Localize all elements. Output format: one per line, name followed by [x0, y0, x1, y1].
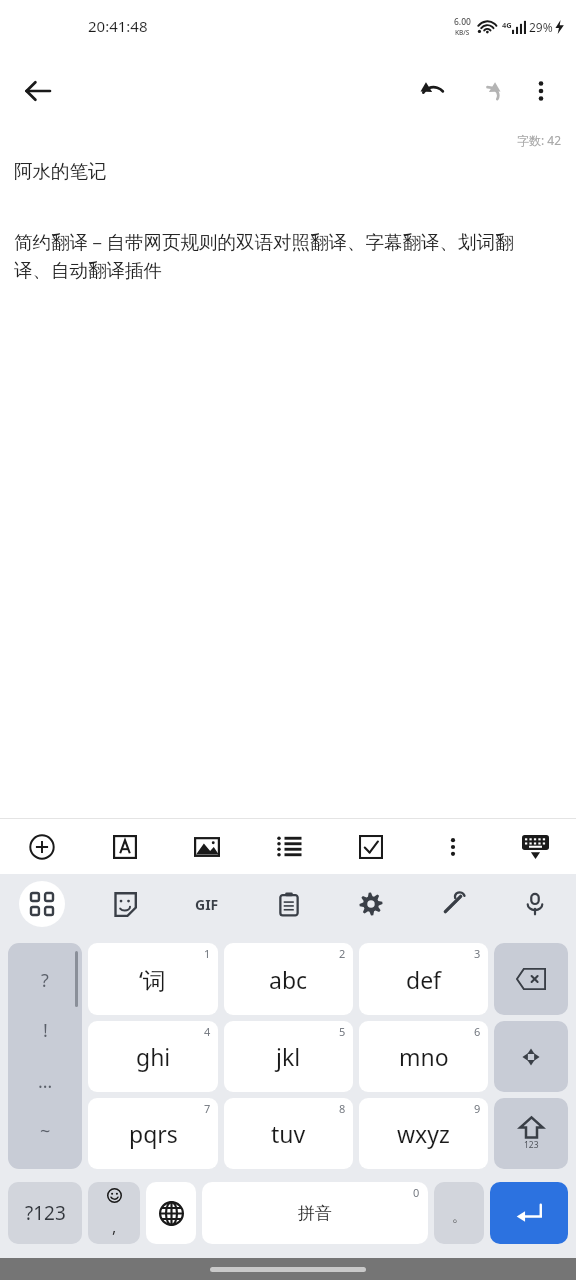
staticText: 20:41:48	[88, 16, 148, 36]
button[interactable]: Redo	[460, 64, 514, 118]
button[interactable]: Delete	[494, 943, 568, 1015]
button[interactable]: Move cursor	[494, 1021, 568, 1092]
staticText: 8	[339, 1101, 346, 1116]
button[interactable]: Clipboard	[248, 874, 330, 934]
button[interactable]: Emoji and comma	[88, 1182, 140, 1244]
button[interactable]: 6	[359, 1021, 488, 1092]
staticText: jkl	[276, 1041, 301, 1072]
button[interactable]: Settings	[330, 874, 412, 934]
staticText: pqrs	[129, 1118, 178, 1149]
staticText: GIF	[195, 895, 219, 914]
button[interactable]: GIF	[166, 874, 248, 934]
staticText: 阿水的笔记	[14, 160, 107, 183]
button[interactable]: ?123	[8, 1182, 82, 1244]
button[interactable]: More options	[514, 64, 568, 118]
staticText: 4	[204, 1024, 211, 1039]
staticText: KB/S	[455, 28, 470, 37]
button[interactable]: Shift / numbers	[494, 1098, 568, 1169]
button[interactable]: Enter	[490, 1182, 568, 1244]
staticText: 6	[474, 1024, 481, 1039]
staticText: 3	[474, 946, 481, 961]
staticText: ghi	[136, 1041, 171, 1072]
button[interactable]: 4	[88, 1021, 218, 1092]
staticText: ~	[40, 1119, 51, 1144]
staticText: 29%	[529, 19, 553, 35]
staticText: 5	[339, 1024, 346, 1039]
staticText: 简约翻译－自带网页规则的双语对照翻译、字幕翻译、划词翻译、自动翻译插件	[14, 231, 550, 282]
staticText: abc	[269, 964, 308, 995]
button[interactable]: 1	[88, 943, 218, 1015]
button[interactable]: Insert image	[166, 819, 248, 874]
button[interactable]: 7	[88, 1098, 218, 1169]
staticText: 9	[474, 1101, 481, 1116]
staticText: tuv	[271, 1118, 306, 1149]
staticText: 6.00	[454, 16, 471, 28]
button[interactable]: 9	[359, 1098, 488, 1169]
button[interactable]: 3	[359, 943, 488, 1015]
button[interactable]: Stickers	[83, 874, 166, 934]
staticText: ‘词	[139, 964, 167, 995]
button[interactable]: 2	[224, 943, 353, 1015]
staticText: …	[38, 1069, 53, 1094]
button[interactable]: Handwriting	[412, 874, 494, 934]
staticText: !	[43, 1018, 48, 1043]
staticText: wxyz	[397, 1118, 450, 1149]
button[interactable]: Undo	[406, 64, 460, 118]
staticText: 拼音	[298, 1203, 332, 1224]
button[interactable]: Apps	[0, 874, 83, 934]
staticText: mno	[399, 1041, 449, 1072]
staticText: 123	[524, 1139, 539, 1151]
button[interactable]: 0	[202, 1182, 428, 1244]
staticText: 1	[204, 946, 211, 961]
button[interactable]: Voice input	[494, 874, 576, 934]
staticText: 。	[452, 1208, 466, 1226]
staticText: ,	[112, 1216, 117, 1238]
button[interactable]: Checklist	[330, 819, 412, 874]
button[interactable]: Period	[434, 1182, 484, 1244]
staticText: 7	[204, 1101, 211, 1116]
staticText: 2	[339, 946, 346, 961]
button[interactable]: More	[412, 819, 494, 874]
button[interactable]: 8	[224, 1098, 353, 1169]
staticText: 字数: 42	[517, 132, 562, 148]
button[interactable]: Symbols	[8, 943, 82, 1169]
button[interactable]: Hide keyboard	[494, 819, 576, 874]
button[interactable]: List	[248, 819, 330, 874]
staticText: ?123	[25, 1200, 66, 1226]
button[interactable]: Switch language	[146, 1182, 196, 1244]
button[interactable]: Text format	[83, 819, 166, 874]
button[interactable]: Back	[12, 65, 64, 117]
staticText: def	[406, 964, 442, 995]
staticText: 4G	[502, 20, 512, 30]
button[interactable]: 5	[224, 1021, 353, 1092]
button[interactable]: Add	[0, 819, 83, 874]
staticText: 0	[413, 1185, 420, 1200]
staticText: ?	[41, 968, 49, 993]
